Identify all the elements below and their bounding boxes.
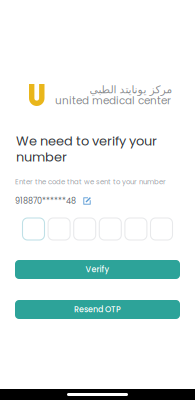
staticText: number: [16, 148, 67, 166]
staticText: Verify: [85, 264, 109, 275]
staticText: Enter the code that we sent to your numb…: [15, 177, 166, 187]
button[interactable]: OTP digit: [99, 218, 121, 240]
button[interactable]: OTP digit: [150, 218, 172, 240]
staticText: 918870******48: [15, 195, 76, 207]
staticText: We need to verify your: [16, 132, 157, 150]
button[interactable]: Edit phone number: [83, 197, 91, 205]
button[interactable]: Verify: [15, 260, 180, 279]
button[interactable]: OTP digit: [125, 218, 147, 240]
button[interactable]: OTP digit: [74, 218, 96, 240]
button[interactable]: OTP digit: [22, 218, 44, 240]
button[interactable]: Resend OTP: [15, 300, 180, 319]
staticText: united medical center: [55, 93, 171, 108]
button[interactable]: OTP digit: [48, 218, 70, 240]
staticText: مركز يونايتد الطبي: [89, 83, 172, 96]
staticText: Resend OTP: [74, 304, 121, 315]
